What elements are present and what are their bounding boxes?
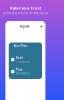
staticText: Basic <box>16 56 23 59</box>
staticText: Unlimited <box>16 72 30 75</box>
button[interactable]: Plus <box>11 68 40 75</box>
staticText: 5 seats inc <box>16 60 30 63</box>
staticText: Plus <box>16 68 22 71</box>
staticText: Lorem ipsum dolor sit amet conse <box>2 11 48 15</box>
staticText: Your Plan <box>13 44 27 48</box>
staticText: English <box>20 25 30 28</box>
staticText: Value you trust <box>9 5 41 10</box>
button[interactable]: Basic <box>11 56 40 63</box>
button[interactable]: English <box>5 21 45 32</box>
